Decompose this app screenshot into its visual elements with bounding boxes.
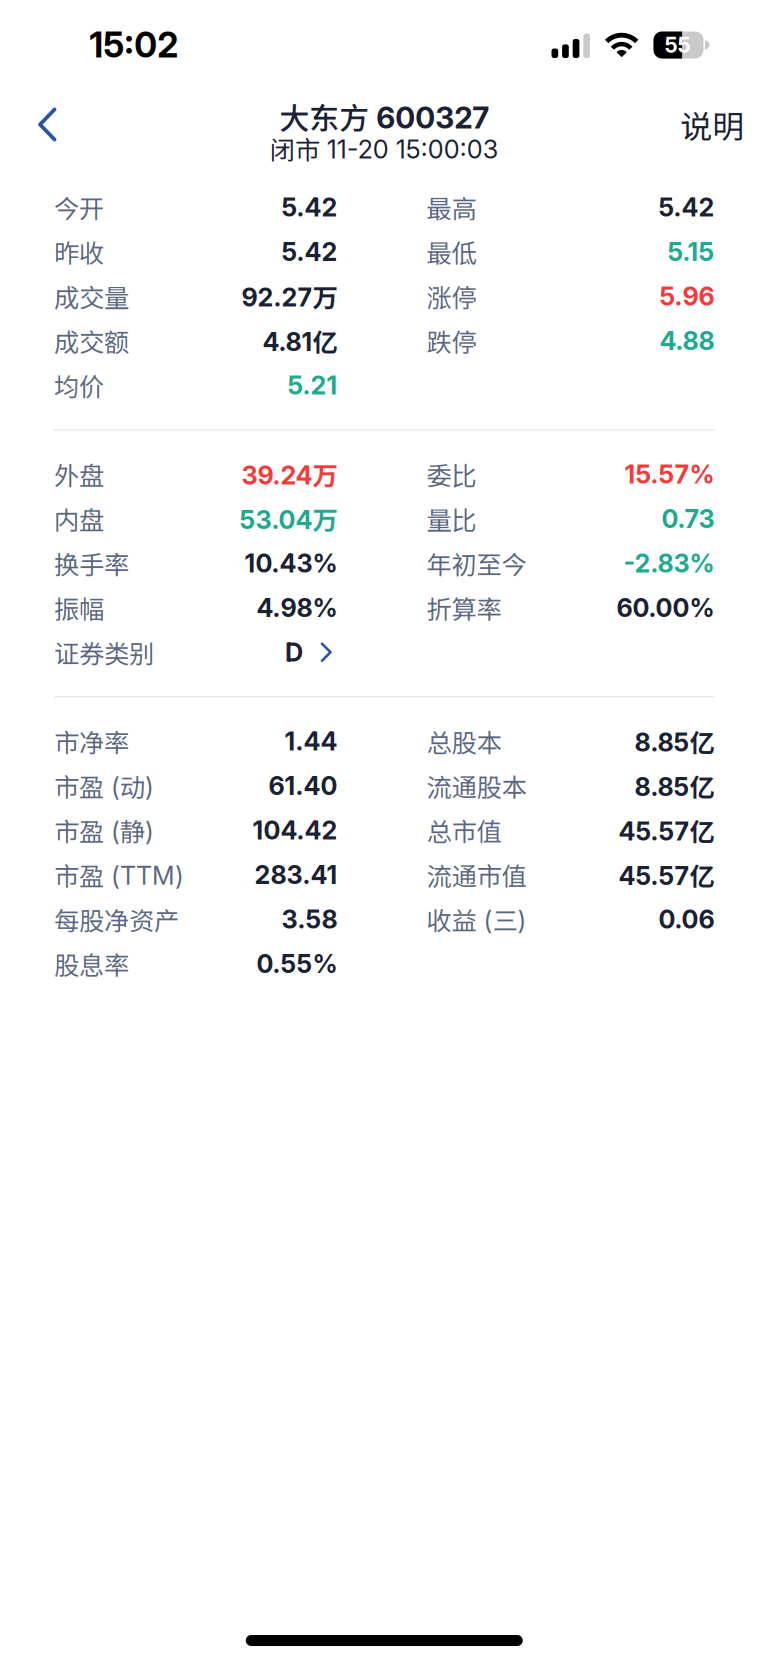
staticText: 0.55% <box>256 948 337 979</box>
staticText: 3.58 <box>281 904 337 935</box>
staticText: 流通市值 <box>426 856 526 893</box>
staticText: 39.24万 <box>241 456 337 493</box>
staticText: 5.96 <box>659 281 714 312</box>
button[interactable]: 证券类别 <box>54 630 337 674</box>
staticText: 15:02 <box>89 24 178 66</box>
staticText: 5.21 <box>287 370 337 401</box>
staticText: 涨停 <box>426 278 476 315</box>
staticText: 10.43% <box>244 548 337 579</box>
staticText: 年初至今 <box>426 545 526 582</box>
staticText: 283.41 <box>254 859 337 890</box>
staticText: 每股净资产 <box>54 901 179 938</box>
staticText: -2.83% <box>623 548 714 579</box>
staticText: 说明 <box>680 101 744 148</box>
staticText: 8.85亿 <box>634 767 714 804</box>
staticText: 92.27万 <box>241 278 337 315</box>
staticText: 0.73 <box>661 503 714 534</box>
staticText: 总市值 <box>426 812 501 849</box>
staticText: 104.42 <box>252 815 337 846</box>
staticText: 外盘 <box>54 456 104 493</box>
staticText: 53.04万 <box>239 500 337 537</box>
staticText: 0.06 <box>658 904 714 935</box>
staticText: 8.85亿 <box>634 723 714 760</box>
staticText: 60.00% <box>616 592 714 623</box>
staticText: 1.44 <box>284 726 337 757</box>
button[interactable]: 说明 <box>680 88 768 160</box>
staticText: 4.81亿 <box>262 322 337 359</box>
staticText: 61.40 <box>268 770 337 801</box>
staticText: 15.57% <box>624 459 714 490</box>
staticText: 成交量 <box>54 278 129 315</box>
staticText: 市盈 (静) <box>54 812 154 849</box>
staticText: 流通股本 <box>426 767 526 804</box>
staticText: 4.98% <box>256 592 337 623</box>
staticText: 收益 (三) <box>426 901 526 938</box>
staticText: 45.57亿 <box>618 812 714 849</box>
staticText: 闭市 11-20 15:00:03 <box>270 130 499 167</box>
staticText: 股息率 <box>54 945 129 982</box>
staticText: 成交额 <box>54 322 129 359</box>
staticText: 均价 <box>54 367 104 404</box>
staticText: 市盈 (TTM) <box>54 856 184 893</box>
staticText: 振幅 <box>54 589 104 626</box>
staticText: 证券类别 <box>54 634 154 671</box>
staticText: 总股本 <box>426 723 501 760</box>
staticText: 折算率 <box>426 589 501 626</box>
staticText: 内盘 <box>54 500 104 537</box>
staticText: 5.42 <box>281 192 337 223</box>
staticText: 5.42 <box>281 236 337 267</box>
staticText: 最低 <box>426 233 476 270</box>
staticText: 市净率 <box>54 723 129 760</box>
staticText: 大东方 600327 <box>279 95 489 138</box>
staticText: 今开 <box>54 189 104 226</box>
staticText: 换手率 <box>54 545 129 582</box>
button[interactable]: Back <box>0 88 76 160</box>
staticText: 跌停 <box>426 322 476 359</box>
staticText: 55 <box>664 32 690 58</box>
staticText: D <box>285 637 303 668</box>
staticText: 45.57亿 <box>618 856 714 893</box>
staticText: 4.88 <box>659 325 714 356</box>
staticText: 5.42 <box>658 192 714 223</box>
staticText: 最高 <box>426 189 476 226</box>
staticText: 昨收 <box>54 233 104 270</box>
staticText: 量比 <box>426 500 476 537</box>
staticText: 委比 <box>426 456 476 493</box>
staticText: 市盈 (动) <box>54 767 154 804</box>
staticText: 5.15 <box>667 236 714 267</box>
